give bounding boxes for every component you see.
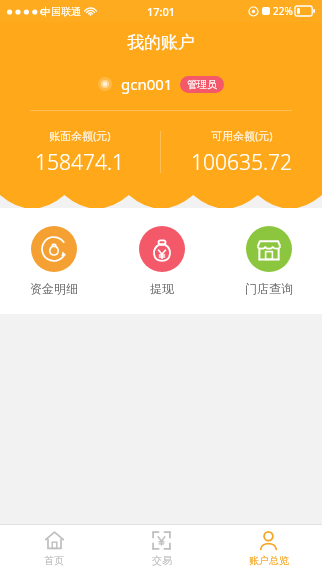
button[interactable]: 账户总览 bbox=[215, 525, 322, 572]
staticText: 22% bbox=[273, 4, 293, 18]
button[interactable]: gcn001 bbox=[0, 74, 322, 94]
button[interactable]: 交易 bbox=[108, 525, 215, 572]
button[interactable]: 资金明细 bbox=[0, 208, 108, 314]
staticText: 交易 bbox=[152, 554, 172, 567]
button[interactable]: 可用余额(元) bbox=[161, 128, 322, 177]
staticText: 158474.1 bbox=[35, 148, 125, 177]
staticText: 管理员 bbox=[187, 78, 217, 91]
staticText: 可用余额(元) bbox=[211, 128, 273, 143]
staticText: 资金明细 bbox=[30, 281, 78, 296]
staticText: 我的账户 bbox=[0, 32, 322, 53]
staticText: 提现 bbox=[150, 281, 174, 296]
staticText: 首页 bbox=[44, 554, 64, 567]
staticText: 17:01 bbox=[147, 4, 176, 19]
staticText: 中国联通 bbox=[41, 5, 81, 18]
staticText: 门店查询 bbox=[245, 281, 293, 296]
staticText: gcn001 bbox=[121, 74, 173, 94]
button[interactable]: 提现 bbox=[108, 208, 215, 314]
staticText: 100635.72 bbox=[191, 148, 293, 177]
button[interactable]: 首页 bbox=[0, 525, 108, 572]
button[interactable]: 账面余额(元) bbox=[0, 128, 160, 177]
staticText: 账面余额(元) bbox=[49, 128, 111, 143]
button[interactable]: 门店查询 bbox=[215, 208, 322, 314]
staticText: 账户总览 bbox=[249, 554, 289, 567]
